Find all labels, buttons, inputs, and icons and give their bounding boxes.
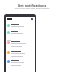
staticText: Stay up to date with what matters [0, 7, 64, 10]
button[interactable] [6, 31, 35, 38]
button[interactable]: More options [31, 18, 33, 20]
button[interactable] [6, 24, 35, 31]
button[interactable] [6, 60, 35, 69]
button[interactable] [6, 41, 35, 50]
staticText: Get notifications [0, 3, 64, 8]
button[interactable] [6, 51, 35, 60]
